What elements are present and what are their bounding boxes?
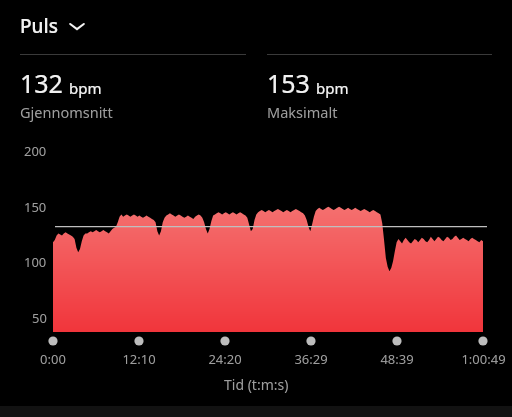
staticText: bpm	[69, 78, 102, 98]
staticText: Tid (t:m:s)	[224, 375, 289, 394]
staticText: Puls	[20, 13, 58, 39]
button[interactable]: 132	[20, 54, 246, 122]
staticText: 132	[20, 66, 63, 100]
staticText: 36:29	[294, 350, 328, 368]
staticText: 150	[24, 198, 47, 216]
button[interactable]: Puls	[20, 13, 93, 39]
staticText: 48:39	[380, 350, 414, 368]
staticText: 100	[24, 253, 47, 271]
staticText: 153	[267, 66, 310, 100]
other: Vis flere valg	[67, 16, 87, 36]
staticText: bpm	[316, 78, 349, 98]
staticText: Maksimalt	[267, 102, 338, 122]
staticText: 1:00:49	[461, 350, 506, 368]
staticText: 50	[32, 309, 47, 327]
button[interactable]: 153	[267, 54, 492, 122]
staticText: 0:00	[40, 350, 66, 368]
staticText: 12:10	[122, 350, 156, 368]
staticText: 24:20	[208, 350, 242, 368]
staticText: Gjennomsnitt	[20, 102, 113, 122]
staticText: 200	[24, 142, 47, 160]
